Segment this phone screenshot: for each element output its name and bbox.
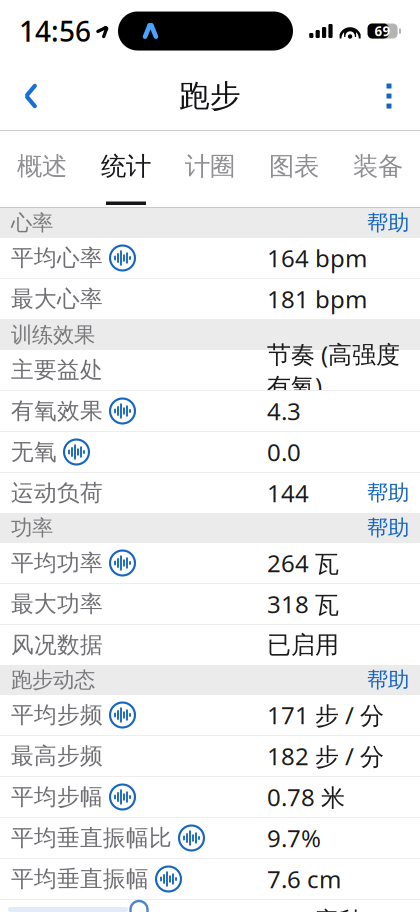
staticText: 帮助: [367, 515, 409, 541]
staticText: 跑步动态: [11, 667, 95, 693]
staticText: 9.7%: [267, 822, 321, 854]
button[interactable]: 主要益处: [0, 350, 420, 391]
staticText: 144: [267, 477, 309, 509]
button[interactable]: 平均垂直振幅比: [0, 818, 420, 859]
staticText: 心率: [11, 210, 53, 236]
staticText: 平均垂直振幅比: [11, 824, 172, 852]
button[interactable]: 更多选项: [366, 73, 412, 119]
staticText: 最高步频: [11, 742, 103, 770]
staticText: 0.0: [267, 436, 301, 468]
staticText: 平均功率: [11, 549, 103, 577]
button[interactable]: 图表: [252, 131, 336, 207]
button[interactable]: 平均步频: [0, 695, 420, 736]
staticText: 主要益处: [11, 356, 103, 384]
staticText: 7.6 cm: [267, 863, 341, 895]
staticText: 有氧效果: [11, 397, 103, 425]
staticText: 装备: [353, 151, 403, 182]
button[interactable]: 平均步幅: [0, 777, 420, 818]
button[interactable]: 最高步频: [0, 736, 420, 777]
staticText: 统计: [101, 151, 151, 182]
staticText: 171 步 / 分: [267, 699, 384, 731]
staticText: 平均步幅: [11, 783, 103, 811]
staticText: 运动负荷: [11, 479, 103, 507]
staticText: 69: [375, 22, 391, 40]
staticText: 平均步频: [11, 701, 103, 729]
staticText: 最大心率: [11, 285, 103, 313]
staticText: 计圈: [185, 151, 235, 182]
button[interactable]: 统计: [84, 131, 168, 207]
staticText: 概述: [17, 151, 67, 182]
staticText: 帮助: [367, 667, 409, 693]
staticText: 280 毫秒: [267, 904, 363, 912]
button[interactable]: 概述: [0, 131, 84, 207]
button[interactable]: 无氧: [0, 432, 420, 473]
button[interactable]: 平均垂直振幅: [0, 859, 420, 900]
staticText: 平均垂直振幅: [11, 865, 149, 893]
staticText: 帮助: [367, 480, 409, 506]
staticText: 181 bpm: [267, 283, 367, 315]
button[interactable]: 平均功率: [0, 543, 420, 584]
button[interactable]: 运动负荷: [0, 473, 420, 513]
button[interactable]: 帮助: [367, 210, 409, 236]
staticText: 平均心率: [11, 244, 103, 272]
staticText: 164 bpm: [267, 242, 367, 274]
staticText: 功率: [11, 515, 53, 541]
staticText: 264 瓦: [267, 547, 339, 579]
staticText: 跑步: [179, 77, 241, 115]
staticText: 318 瓦: [267, 588, 339, 620]
button[interactable]: 计圈: [168, 131, 252, 207]
staticText: 0.78 米: [267, 781, 345, 813]
staticText: 已启用: [267, 630, 339, 660]
button[interactable]: 帮助: [367, 667, 409, 693]
button[interactable]: 装备: [336, 131, 420, 207]
button[interactable]: 风况数据: [0, 625, 420, 665]
staticText: 图表: [269, 151, 319, 182]
button[interactable]: 最大功率: [0, 584, 420, 625]
button[interactable]: 平均心率: [0, 238, 420, 279]
button[interactable]: 帮助: [367, 515, 409, 541]
staticText: 182 步 / 分: [267, 740, 384, 772]
staticText: 14:56: [19, 12, 91, 50]
staticText: 节奏 (高强度有氧): [267, 338, 400, 402]
staticText: 无氧: [11, 438, 57, 466]
staticText: 训练效果: [11, 322, 95, 348]
staticText: 4.3: [267, 395, 301, 427]
staticText: 风况数据: [11, 631, 103, 659]
staticText: 帮助: [367, 210, 409, 236]
button[interactable]: 最大心率: [0, 279, 420, 320]
staticText: 最大功率: [11, 590, 103, 618]
button[interactable]: 返回: [8, 73, 54, 119]
button[interactable]: 有氧效果: [0, 391, 420, 432]
